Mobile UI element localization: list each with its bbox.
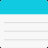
button[interactable] — [0, 40, 48, 48]
button[interactable] — [0, 32, 48, 40]
button[interactable] — [0, 23, 48, 32]
button[interactable] — [0, 14, 48, 23]
